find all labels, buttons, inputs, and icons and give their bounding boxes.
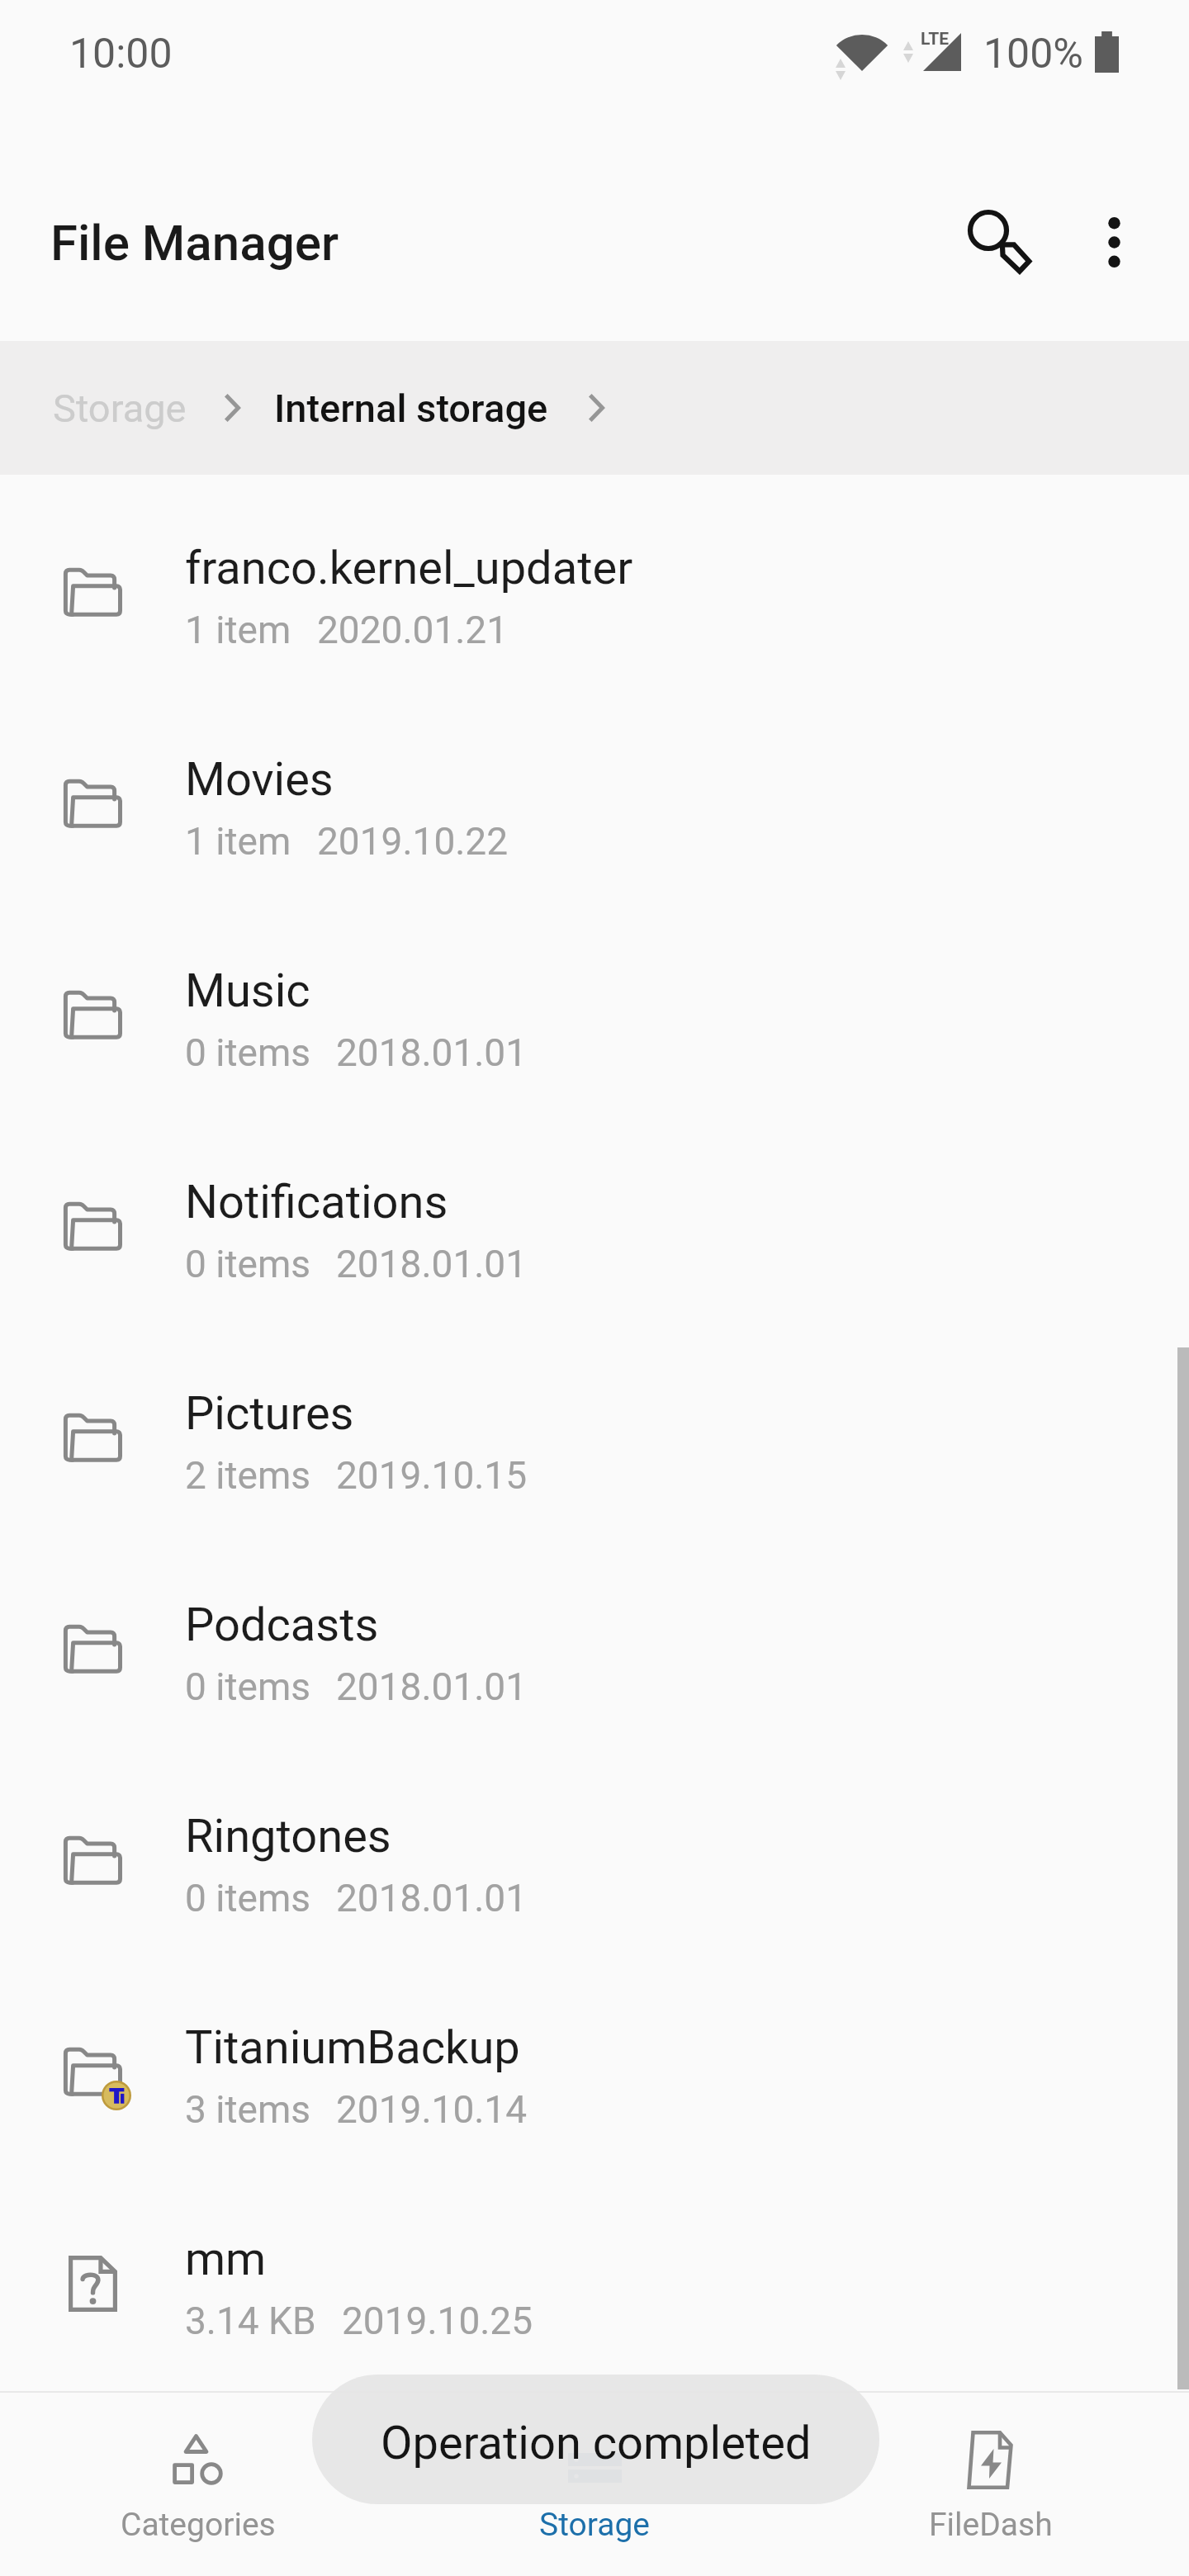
staticText: Storage xyxy=(539,2506,651,2544)
button[interactable]: mm xyxy=(0,2166,1189,2377)
staticText: 1 item xyxy=(185,608,291,652)
button[interactable]: Categories xyxy=(0,2393,396,2576)
staticText: 2020.01.21 xyxy=(317,608,509,652)
staticText: Internal storage xyxy=(274,386,548,431)
staticText: 0 items xyxy=(185,1876,310,1920)
button[interactable]: Podcasts xyxy=(0,1532,1189,1743)
staticText: Ringtones xyxy=(185,1809,391,1863)
staticText: Categories xyxy=(121,2506,276,2544)
button[interactable]: Music xyxy=(0,897,1189,1109)
staticText: 2018.01.01 xyxy=(336,1242,528,1286)
button[interactable]: More options xyxy=(1058,186,1170,298)
button[interactable]: franco.kernel_updater xyxy=(0,475,1189,686)
button[interactable]: Internal storage xyxy=(272,361,550,456)
button[interactable]: Search xyxy=(929,171,1049,291)
button[interactable]: TitaniumBackup xyxy=(0,1954,1189,2166)
button[interactable]: FileDash xyxy=(793,2393,1189,2576)
staticText: 10:00 xyxy=(69,30,173,78)
staticText: TitaniumBackup xyxy=(185,2020,520,2075)
staticText: 0 items xyxy=(185,1664,310,1709)
staticText: 3.14 KB xyxy=(185,2299,316,2343)
button[interactable]: Pictures xyxy=(0,1320,1189,1532)
staticText: Pictures xyxy=(185,1386,354,1441)
staticText: 2018.01.01 xyxy=(336,1664,528,1709)
staticText: 1 item xyxy=(185,819,291,864)
button[interactable]: Movies xyxy=(0,686,1189,897)
staticText: 0 items xyxy=(185,1242,310,1286)
staticText: File Manager xyxy=(50,214,339,272)
staticText: Operation completed xyxy=(381,2416,812,2470)
staticText: 2018.01.01 xyxy=(336,1876,528,1920)
button[interactable]: Storage xyxy=(396,2393,793,2576)
staticText: Notifications xyxy=(185,1175,448,1229)
button[interactable]: Storage xyxy=(51,343,188,474)
staticText: Movies xyxy=(185,752,334,807)
staticText: 100% xyxy=(983,30,1083,78)
staticText: 3 items xyxy=(185,2087,310,2132)
staticText: franco.kernel_updater xyxy=(185,541,633,595)
staticText: 2 items xyxy=(185,1453,310,1498)
staticText: FileDash xyxy=(929,2506,1053,2544)
staticText: Podcasts xyxy=(185,1598,379,1652)
staticText: 0 items xyxy=(185,1030,310,1075)
staticText: Music xyxy=(185,964,310,1018)
staticText: 2019.10.15 xyxy=(336,1453,528,1498)
button[interactable]: Ringtones xyxy=(0,1743,1189,1954)
staticText: LTE xyxy=(921,29,950,50)
staticText: 2019.10.14 xyxy=(336,2087,528,2132)
staticText: 2019.10.25 xyxy=(342,2299,533,2343)
staticText: Storage xyxy=(53,386,187,431)
staticText: mm xyxy=(185,2232,267,2286)
staticText: 2018.01.01 xyxy=(336,1030,528,1075)
staticText: 2019.10.22 xyxy=(317,819,509,864)
button[interactable]: Notifications xyxy=(0,1109,1189,1320)
